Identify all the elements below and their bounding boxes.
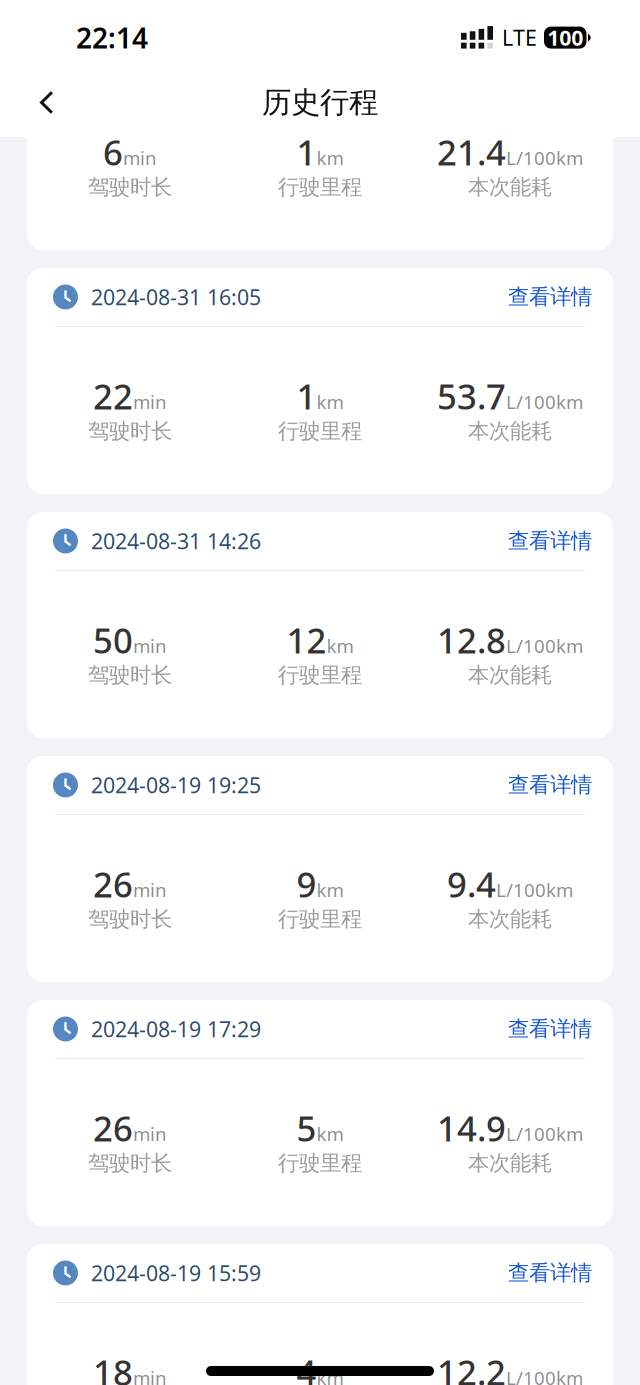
staticText: 100 (547, 23, 583, 52)
staticText: 查看详情 (508, 1260, 592, 1286)
staticText: 行驶里程 (278, 418, 362, 444)
staticText: 53.7 (437, 373, 506, 419)
button[interactable]: 查看详情 (508, 284, 592, 310)
staticText: 2024-08-31 14:26 (91, 527, 261, 555)
staticText: 1 (296, 129, 316, 175)
staticText: min (133, 389, 167, 414)
staticText: min (133, 1365, 167, 1385)
staticText: 21.4 (437, 129, 506, 175)
button[interactable]: Back (0, 75, 69, 130)
button[interactable]: 查看详情 (508, 40, 592, 66)
staticText: min (133, 633, 167, 658)
staticText: min (133, 877, 167, 902)
staticText: 14.9 (437, 1105, 506, 1151)
staticText: 驾驶时长 (88, 1150, 172, 1176)
staticText: 驾驶时长 (88, 906, 172, 932)
staticText: 9 (296, 861, 316, 907)
staticText: 22 (93, 373, 133, 419)
staticText: 26 (93, 1105, 133, 1151)
staticText: min (123, 145, 157, 170)
staticText: 行驶里程 (278, 906, 362, 932)
staticText: 1 (296, 373, 316, 419)
staticText: 行驶里程 (278, 1150, 362, 1176)
staticText: 驾驶时长 (88, 418, 172, 444)
staticText: L/100km (506, 389, 583, 414)
staticText: 5 (296, 1105, 316, 1151)
staticText: 4 (296, 1349, 316, 1385)
staticText: km (326, 633, 353, 658)
staticText: 6 (103, 129, 123, 175)
staticText: km (316, 1365, 343, 1385)
button[interactable]: 查看详情 (508, 1016, 592, 1042)
staticText: 2024-08-31 16:05 (91, 283, 261, 311)
staticText: 本次能耗 (468, 662, 552, 688)
staticText: 查看详情 (508, 528, 592, 554)
staticText: 12.8 (437, 617, 506, 663)
button[interactable]: 查看详情 (508, 772, 592, 798)
button[interactable]: 查看详情 (508, 528, 592, 554)
staticText: km (316, 877, 343, 902)
staticText: km (316, 389, 343, 414)
staticText: 2024-08-31 18:52 (91, 39, 261, 67)
staticText: 驾驶时长 (88, 174, 172, 200)
staticText: 行驶里程 (278, 662, 362, 688)
staticText: 查看详情 (508, 772, 592, 798)
staticText: L/100km (506, 1365, 583, 1385)
staticText: 12 (286, 617, 326, 663)
button[interactable]: 查看详情 (508, 1260, 592, 1286)
staticText: 查看详情 (508, 1016, 592, 1042)
staticText: 22:14 (76, 19, 148, 56)
staticText: 行驶里程 (278, 174, 362, 200)
staticText: 50 (93, 617, 133, 663)
staticText: 本次能耗 (468, 906, 552, 932)
staticText: min (133, 1121, 167, 1146)
staticText: 12.2 (437, 1349, 506, 1385)
staticText: 18 (93, 1349, 133, 1385)
staticText: L/100km (506, 145, 583, 170)
staticText: 本次能耗 (468, 418, 552, 444)
staticText: 9.4 (447, 861, 496, 907)
staticText: 查看详情 (508, 284, 592, 310)
staticText: 驾驶时长 (88, 662, 172, 688)
staticText: L/100km (506, 1121, 583, 1146)
staticText: km (316, 145, 343, 170)
staticText: 26 (93, 861, 133, 907)
staticText: 2024-08-19 15:59 (91, 1259, 261, 1287)
staticText: 2024-08-19 17:29 (91, 1015, 261, 1043)
staticText: L/100km (506, 633, 583, 658)
staticText: L/100km (496, 877, 573, 902)
staticText: 历史行程 (262, 84, 378, 120)
staticText: LTE (502, 23, 537, 52)
staticText: 本次能耗 (468, 174, 552, 200)
staticText: 本次能耗 (468, 1150, 552, 1176)
staticText: 查看详情 (508, 40, 592, 66)
staticText: 2024-08-19 19:25 (91, 771, 261, 799)
staticText: km (316, 1121, 343, 1146)
